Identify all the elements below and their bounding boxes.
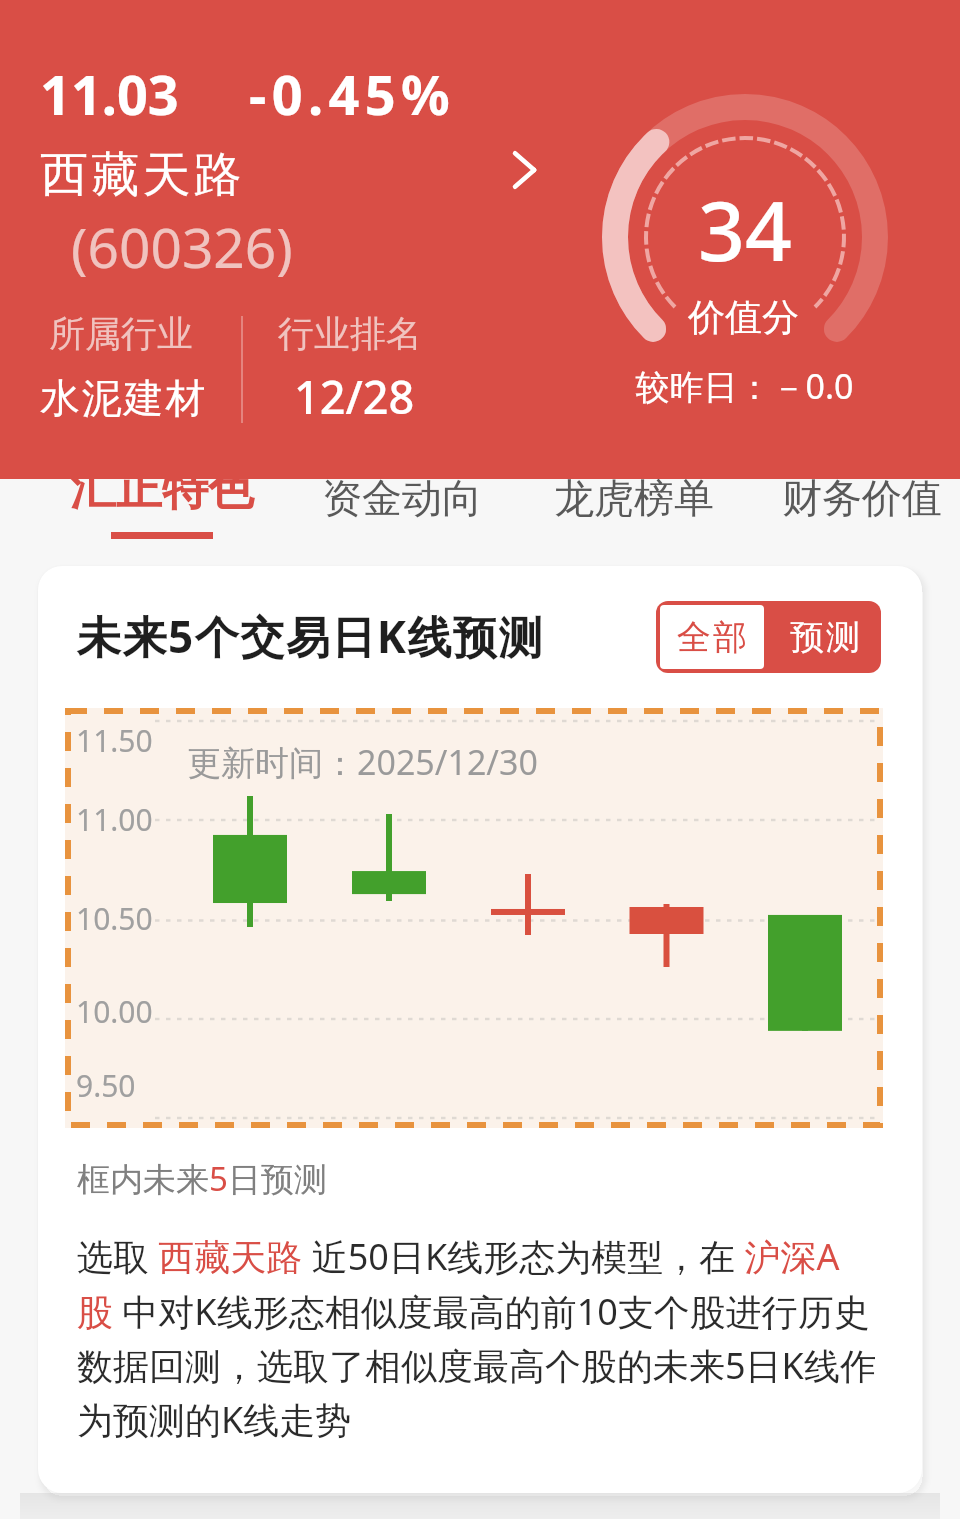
staticText: 全部: [676, 616, 748, 659]
staticText: 11.03: [40, 57, 179, 131]
staticText: 龙虎榜单: [554, 473, 714, 523]
staticText: 11.50: [76, 720, 153, 761]
staticText: 预测: [789, 616, 861, 659]
staticText: 34: [698, 173, 792, 285]
staticText: 未来5个交易日K线预测: [77, 606, 544, 666]
staticText: 财务价值: [782, 473, 942, 523]
staticText: 水泥建材: [40, 373, 208, 423]
button[interactable]: 全部: [660, 605, 764, 669]
staticText: 所属行业: [49, 311, 193, 356]
staticText: 较昨日：－0.0: [635, 363, 854, 409]
button[interactable]: 资金动向: [282, 449, 522, 549]
button[interactable]: 龙虎榜单: [514, 449, 754, 549]
staticText: -0.45%: [249, 57, 456, 131]
staticText: 更新时间：2025/12/30: [187, 739, 538, 785]
staticText: 资金动向: [322, 473, 482, 523]
staticText: 汇正特色: [70, 460, 254, 518]
staticText: 价值分: [688, 294, 799, 341]
staticText: 行业排名: [278, 311, 422, 356]
staticText: 10.00: [76, 991, 153, 1032]
staticText: 12/28: [294, 366, 415, 427]
button[interactable]: 预测: [768, 601, 881, 673]
button[interactable]: 汇正特色: [42, 449, 282, 549]
staticText: 9.50: [76, 1065, 136, 1106]
staticText: 框内未来5日预测: [77, 1156, 327, 1201]
staticText: (600326): [71, 209, 293, 284]
staticText: 西藏天路: [40, 145, 245, 205]
staticText: 10.50: [76, 898, 153, 939]
button[interactable]: 查看个股详情: [496, 143, 550, 197]
button[interactable]: 财务价值: [742, 449, 960, 549]
staticText: 11.00: [76, 799, 153, 840]
staticText: 选取 西藏天路 近50日K线形态为模型，在 沪深A 股 中对K线形态相似度最高的…: [77, 1232, 876, 1444]
